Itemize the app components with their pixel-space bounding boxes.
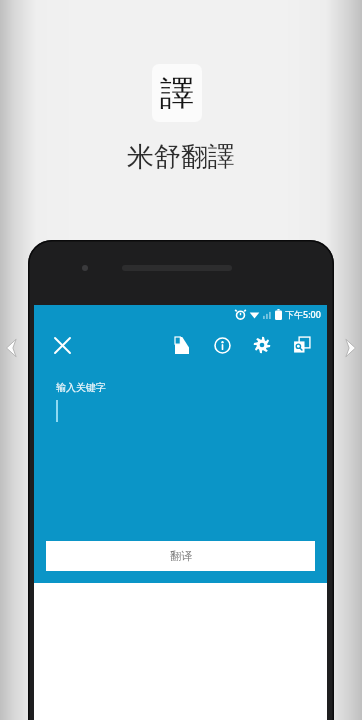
staticText: 米舒翻譯 xyxy=(0,140,362,174)
staticText: 譯 xyxy=(160,72,194,115)
button[interactable]: Translate xyxy=(285,328,319,362)
button[interactable]: 输入关键字 xyxy=(34,373,327,541)
staticText: 下午5:00 xyxy=(285,308,321,320)
button[interactable]: Dictionary xyxy=(165,328,199,362)
button[interactable]: Settings xyxy=(245,328,279,362)
staticText: 输入关键字 xyxy=(56,381,106,394)
button[interactable]: Close xyxy=(46,329,78,361)
button[interactable]: 翻译 xyxy=(46,541,315,571)
staticText: 翻译 xyxy=(170,549,192,563)
button[interactable]: Next xyxy=(340,326,362,370)
button[interactable]: Previous xyxy=(0,326,22,370)
button[interactable]: About xyxy=(205,328,239,362)
